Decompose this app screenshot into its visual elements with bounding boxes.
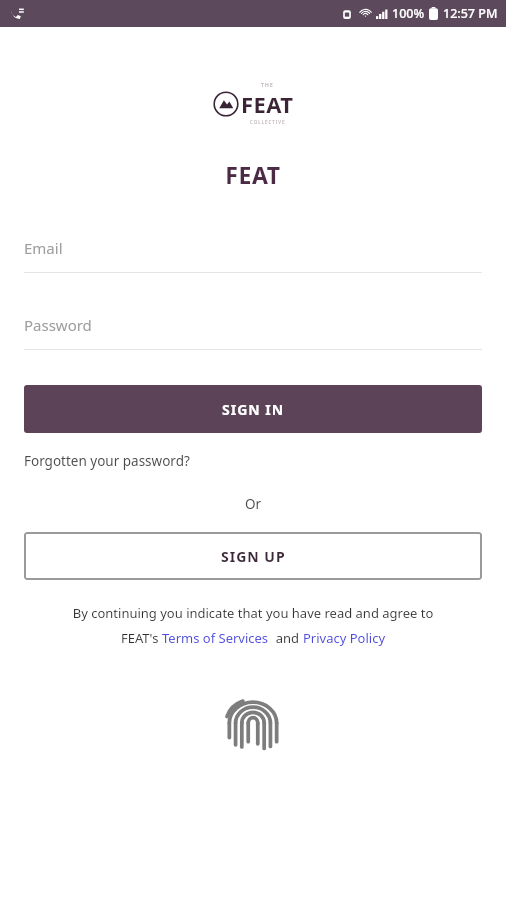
- button[interactable]: Terms of Services: [162, 629, 269, 647]
- staticText: COLLECTIVE: [250, 119, 286, 125]
- staticText: and: [269, 629, 303, 647]
- staticText: Email: [24, 238, 63, 258]
- staticText: FEAT's: [121, 629, 162, 647]
- button[interactable]: Fingerprint login: [220, 690, 286, 756]
- staticText: SIGN UP: [221, 547, 286, 566]
- staticText: By continuing you indicate that you have…: [0, 604, 506, 622]
- staticText: SIGN IN: [222, 400, 285, 419]
- staticText: Password: [24, 315, 92, 335]
- staticText: THE: [261, 82, 274, 89]
- button[interactable]: SIGN UP: [24, 532, 482, 580]
- button[interactable]: SIGN IN: [24, 385, 482, 433]
- staticText: Or: [0, 495, 506, 513]
- button[interactable]: Password: [0, 315, 506, 350]
- button[interactable]: Email: [0, 238, 506, 273]
- staticText: 12:57 PM: [443, 5, 498, 22]
- staticText: 100%: [392, 5, 425, 22]
- button[interactable]: Privacy Policy: [303, 629, 386, 647]
- staticText: FEAT: [241, 89, 294, 119]
- button[interactable]: Forgotten your password?: [0, 452, 190, 470]
- staticText: FEAT: [0, 159, 506, 190]
